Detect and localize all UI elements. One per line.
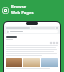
button[interactable]: Photo (6, 58, 22, 67)
button[interactable]: Photo (41, 58, 58, 67)
button[interactable]: Photo (23, 58, 40, 67)
button[interactable] (6, 30, 58, 33)
button[interactable]: Browse web pages (2, 4, 62, 16)
staticText: Web Pages (11, 10, 34, 16)
other: Browse web pages (2, 7, 9, 14)
staticText: Browse (11, 4, 27, 10)
